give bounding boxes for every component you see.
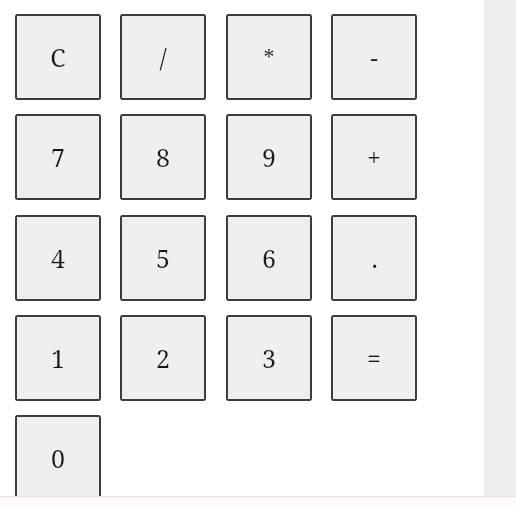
button[interactable]: 1 xyxy=(15,315,101,401)
staticText: 8 xyxy=(156,140,170,174)
staticText: 5 xyxy=(156,241,170,275)
button[interactable]: = xyxy=(331,315,417,401)
staticText: + xyxy=(367,140,381,174)
button[interactable]: 2 xyxy=(120,315,206,401)
staticText: = xyxy=(367,341,381,375)
staticText: C xyxy=(50,40,66,74)
staticText: - xyxy=(370,40,378,74)
staticText: 6 xyxy=(262,241,276,275)
button[interactable]: - xyxy=(331,14,417,100)
staticText: 2 xyxy=(156,341,170,375)
button[interactable]: 5 xyxy=(120,215,206,301)
staticText: 4 xyxy=(51,241,65,275)
button[interactable]: 3 xyxy=(226,315,312,401)
staticText: 1 xyxy=(51,341,65,375)
staticText: 9 xyxy=(262,140,276,174)
button[interactable]: + xyxy=(331,114,417,200)
button[interactable]: C xyxy=(15,14,101,100)
button[interactable]: 0 xyxy=(15,415,101,496)
staticText: / xyxy=(159,40,167,74)
button[interactable]: 9 xyxy=(226,114,312,200)
staticText: . xyxy=(371,241,378,275)
staticText: 7 xyxy=(51,140,65,174)
staticText: * xyxy=(263,42,275,72)
button[interactable]: 8 xyxy=(120,114,206,200)
button[interactable]: . xyxy=(331,215,417,301)
button[interactable]: / xyxy=(120,14,206,100)
staticText: 3 xyxy=(262,341,276,375)
staticText: 0 xyxy=(51,441,65,475)
button[interactable]: * xyxy=(226,14,312,100)
button[interactable]: 7 xyxy=(15,114,101,200)
button[interactable]: 6 xyxy=(226,215,312,301)
button[interactable]: 4 xyxy=(15,215,101,301)
